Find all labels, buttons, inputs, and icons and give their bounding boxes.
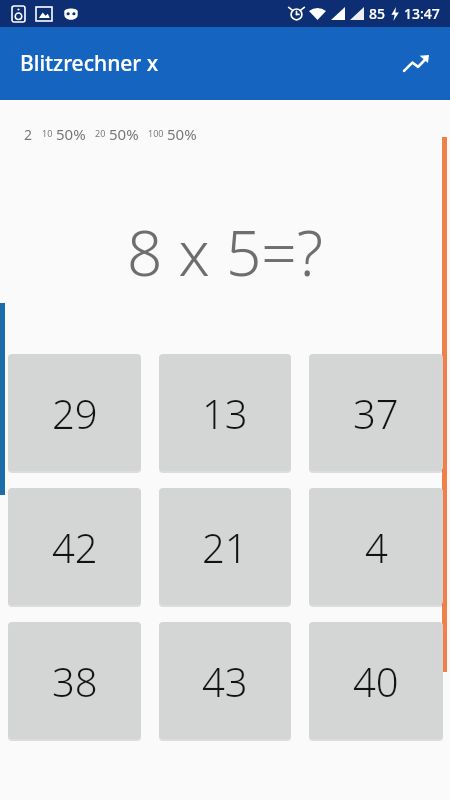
staticText: 8 x 5=? — [0, 210, 450, 294]
staticText: 40 — [353, 654, 399, 708]
staticText: 50% — [56, 124, 86, 144]
button[interactable]: 37 — [309, 354, 443, 471]
staticText: 4 — [365, 520, 388, 574]
staticText: 20 — [95, 127, 106, 139]
button[interactable]: 40 — [309, 622, 443, 739]
staticText: Blitzrechner x — [20, 49, 159, 78]
button[interactable]: 42 — [8, 488, 141, 605]
staticText: 42 — [52, 520, 98, 574]
staticText: 13 — [202, 386, 248, 440]
staticText: 2 — [24, 125, 33, 144]
button[interactable]: 43 — [159, 622, 291, 739]
staticText: 37 — [353, 386, 399, 440]
staticText: 100 — [148, 127, 164, 139]
staticText: 10 — [42, 127, 53, 139]
staticText: 50% — [109, 124, 139, 144]
staticText: 43 — [202, 654, 248, 708]
staticText: 50% — [167, 124, 197, 144]
button[interactable]: 29 — [8, 354, 141, 471]
staticText: 38 — [52, 654, 98, 708]
staticText: 21 — [202, 520, 248, 574]
staticText: 13:47 — [404, 4, 440, 23]
button[interactable]: 4 — [309, 488, 443, 605]
button[interactable]: 38 — [8, 622, 141, 739]
staticText: 29 — [52, 386, 98, 440]
button[interactable]: Statistics — [392, 40, 440, 88]
button[interactable]: 13 — [159, 354, 291, 471]
staticText: 85 — [369, 4, 386, 23]
button[interactable]: 21 — [159, 488, 291, 605]
